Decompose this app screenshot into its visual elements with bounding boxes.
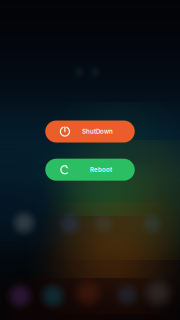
button[interactable]: ShutDown <box>45 120 135 142</box>
staticText: ShutDown <box>82 128 113 135</box>
button[interactable]: Reboot <box>45 159 135 181</box>
staticText: Reboot <box>90 166 112 173</box>
